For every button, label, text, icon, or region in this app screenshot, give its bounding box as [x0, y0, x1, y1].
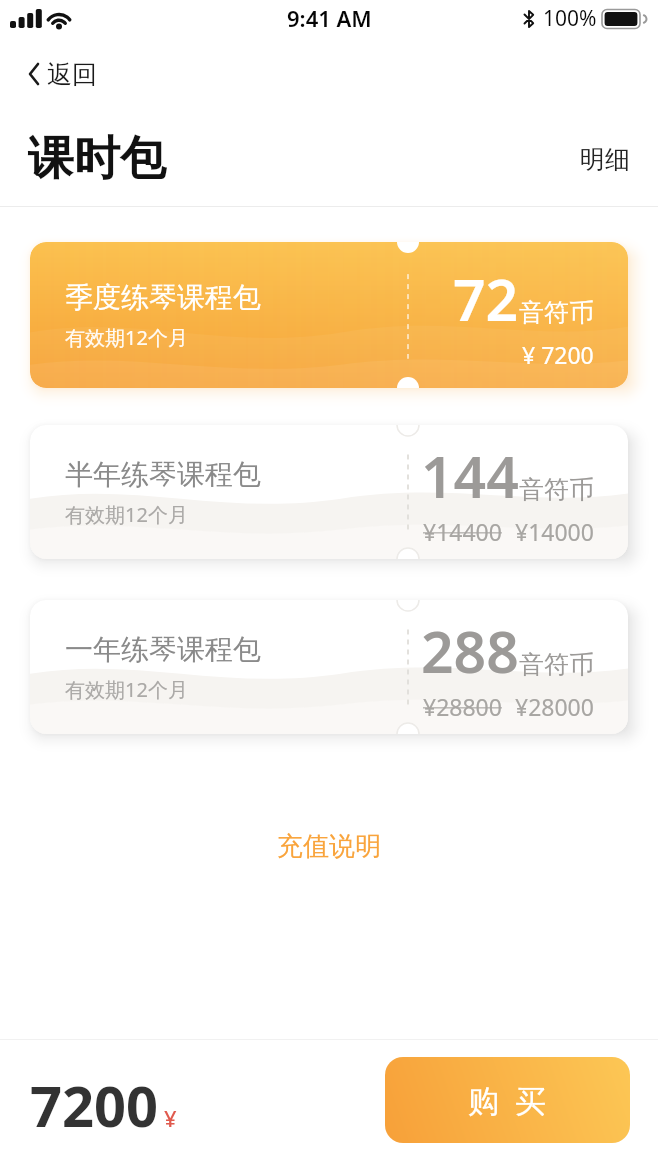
staticText: ¥14000	[515, 516, 594, 547]
staticText: 半年练琴课程包	[65, 457, 261, 492]
staticText: 288	[421, 612, 519, 690]
button[interactable]: 明细	[580, 144, 630, 175]
button[interactable]: 充值说明	[277, 830, 381, 863]
staticText: 9:41 AM	[287, 3, 372, 33]
staticText: 购 买	[468, 1079, 547, 1121]
button[interactable]: 一年练琴课程包	[30, 600, 628, 734]
staticText: 有效期12个月	[65, 501, 188, 528]
staticText: 音符币	[519, 649, 594, 680]
staticText: 音符币	[519, 297, 594, 328]
staticText: 144	[421, 437, 519, 515]
staticText: 有效期12个月	[65, 324, 188, 351]
staticText: ¥	[164, 1103, 177, 1133]
staticText: ¥28800	[423, 691, 502, 722]
button[interactable]: 半年练琴课程包	[30, 425, 628, 559]
staticText: 一年练琴课程包	[65, 632, 261, 667]
button[interactable]: 购 买	[385, 1057, 630, 1143]
staticText: 音符币	[519, 474, 594, 505]
button[interactable]: 季度练琴课程包	[30, 242, 628, 388]
staticText: 季度练琴课程包	[65, 280, 261, 315]
staticText: 课时包	[28, 130, 166, 188]
staticText: 有效期12个月	[65, 676, 188, 703]
staticText: ¥ 7200	[522, 339, 594, 370]
staticText: 72	[453, 260, 519, 338]
staticText: ¥14400	[423, 516, 502, 547]
staticText: 返回	[47, 59, 97, 90]
staticText: 100%	[543, 4, 597, 33]
staticText: ¥28000	[515, 691, 594, 722]
button[interactable]: 返回	[28, 58, 97, 90]
staticText: 7200	[30, 1067, 159, 1143]
